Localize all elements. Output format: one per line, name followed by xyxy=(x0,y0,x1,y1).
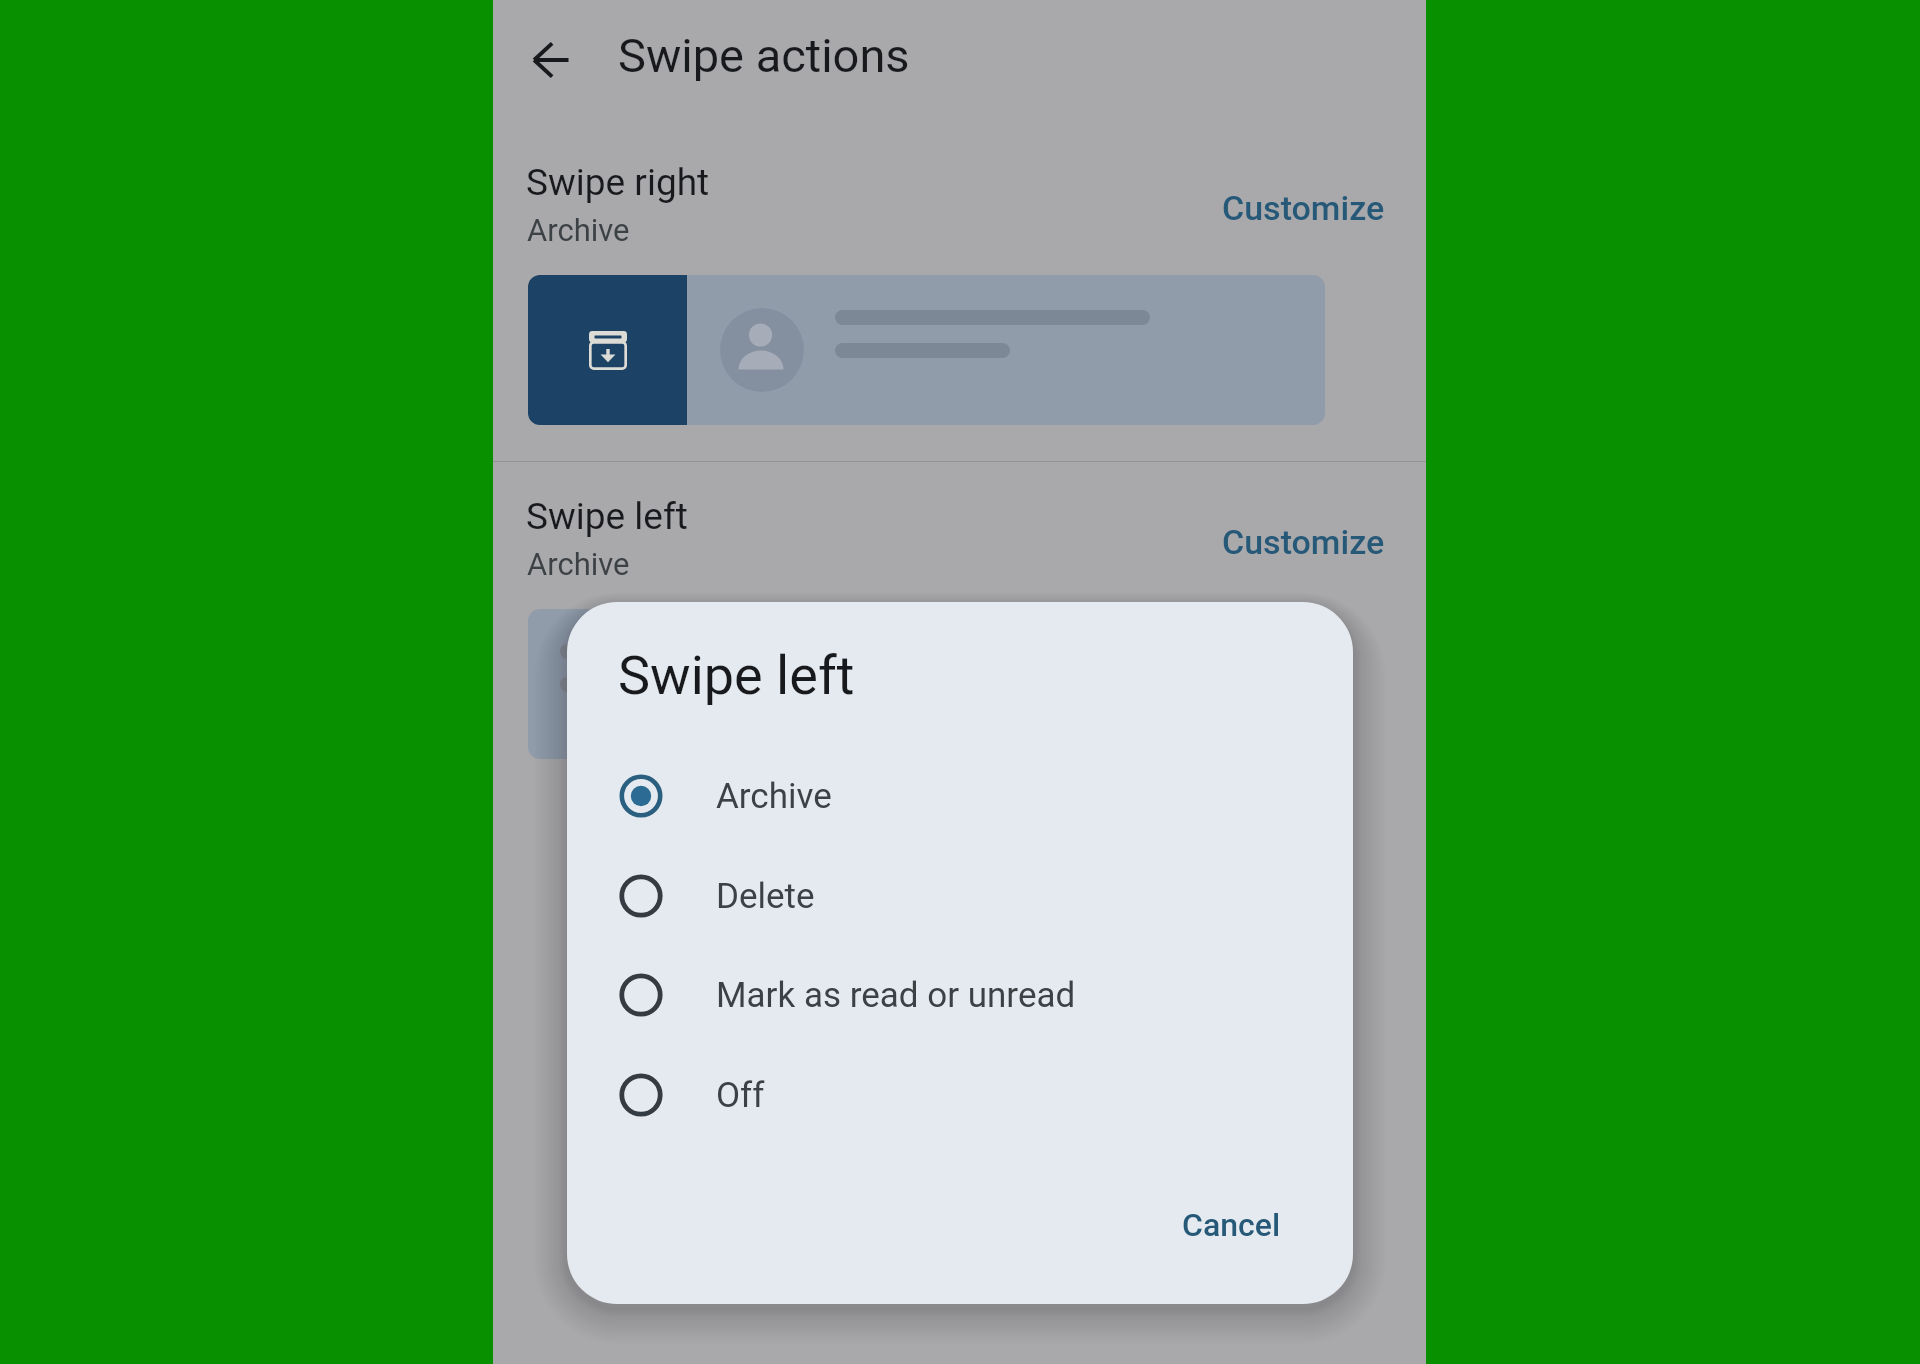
staticText: Archive xyxy=(716,776,832,817)
staticText: Customize xyxy=(1222,522,1385,562)
button[interactable]: Customize xyxy=(1206,512,1401,572)
staticText: Customize xyxy=(1222,188,1385,228)
staticText: Swipe left xyxy=(618,644,855,707)
button[interactable]: Cancel xyxy=(1164,1194,1299,1256)
button[interactable]: Off xyxy=(595,1051,1325,1139)
button[interactable]: Archive xyxy=(595,752,1325,840)
button[interactable]: Back xyxy=(518,26,585,93)
button[interactable]: Mark as read or unread xyxy=(595,951,1325,1039)
staticText: Mark as read or unread xyxy=(716,975,1076,1016)
staticText: Cancel xyxy=(1182,1206,1281,1244)
staticText: Archive xyxy=(527,212,630,248)
staticText: Archive xyxy=(527,546,630,582)
staticText: Swipe actions xyxy=(618,28,910,83)
button[interactable]: Delete xyxy=(595,852,1325,940)
staticText: Swipe left xyxy=(526,495,688,538)
staticText: Delete xyxy=(716,876,815,917)
button[interactable]: Customize xyxy=(1206,178,1401,238)
staticText: Swipe right xyxy=(526,161,710,204)
staticText: Off xyxy=(716,1075,765,1116)
